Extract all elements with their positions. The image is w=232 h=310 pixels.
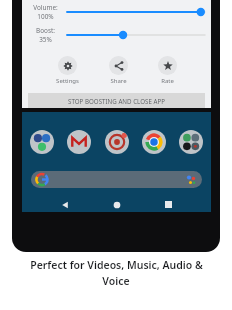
button[interactable]: Settings bbox=[54, 54, 81, 87]
button[interactable]: Share bbox=[107, 54, 130, 87]
staticText: 100% bbox=[37, 12, 54, 21]
staticText: Voice bbox=[102, 274, 130, 288]
button[interactable]: Boost: bbox=[67, 29, 205, 41]
staticText: Volume: bbox=[33, 3, 58, 12]
button[interactable]: STOP BOOSTING AND CLOSE APP bbox=[28, 93, 205, 108]
button[interactable]: App 4 bbox=[179, 130, 203, 154]
button[interactable]: Volume: bbox=[67, 6, 205, 18]
button[interactable]: App 2 bbox=[105, 130, 129, 154]
button[interactable]: Rate bbox=[156, 54, 179, 87]
staticText: Boost: bbox=[36, 26, 55, 35]
staticText: Settings bbox=[56, 77, 79, 85]
button[interactable]: App 0 bbox=[30, 130, 54, 154]
staticText: Rate bbox=[161, 77, 174, 85]
button[interactable]: App 1 bbox=[67, 130, 91, 154]
button[interactable]: Recent apps bbox=[160, 197, 176, 212]
staticText: 35% bbox=[39, 35, 52, 44]
button[interactable]: Home bbox=[109, 197, 125, 212]
button[interactable]: App 3 bbox=[142, 130, 166, 154]
staticText: STOP BOOSTING AND CLOSE APP bbox=[68, 97, 165, 105]
button[interactable]: Back bbox=[57, 197, 73, 212]
staticText: Share bbox=[110, 77, 127, 85]
button[interactable] bbox=[31, 171, 202, 188]
staticText: Perfect for Videos, Music, Audio & bbox=[30, 258, 203, 272]
